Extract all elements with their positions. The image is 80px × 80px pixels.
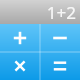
staticText: 1+2 xyxy=(46,1,76,24)
button[interactable]: Plus xyxy=(0,24,40,52)
button[interactable]: Equals xyxy=(40,52,80,80)
button[interactable]: Multiply xyxy=(0,52,40,80)
button[interactable]: 1+2 xyxy=(0,0,80,24)
button[interactable]: Minus xyxy=(40,24,80,52)
